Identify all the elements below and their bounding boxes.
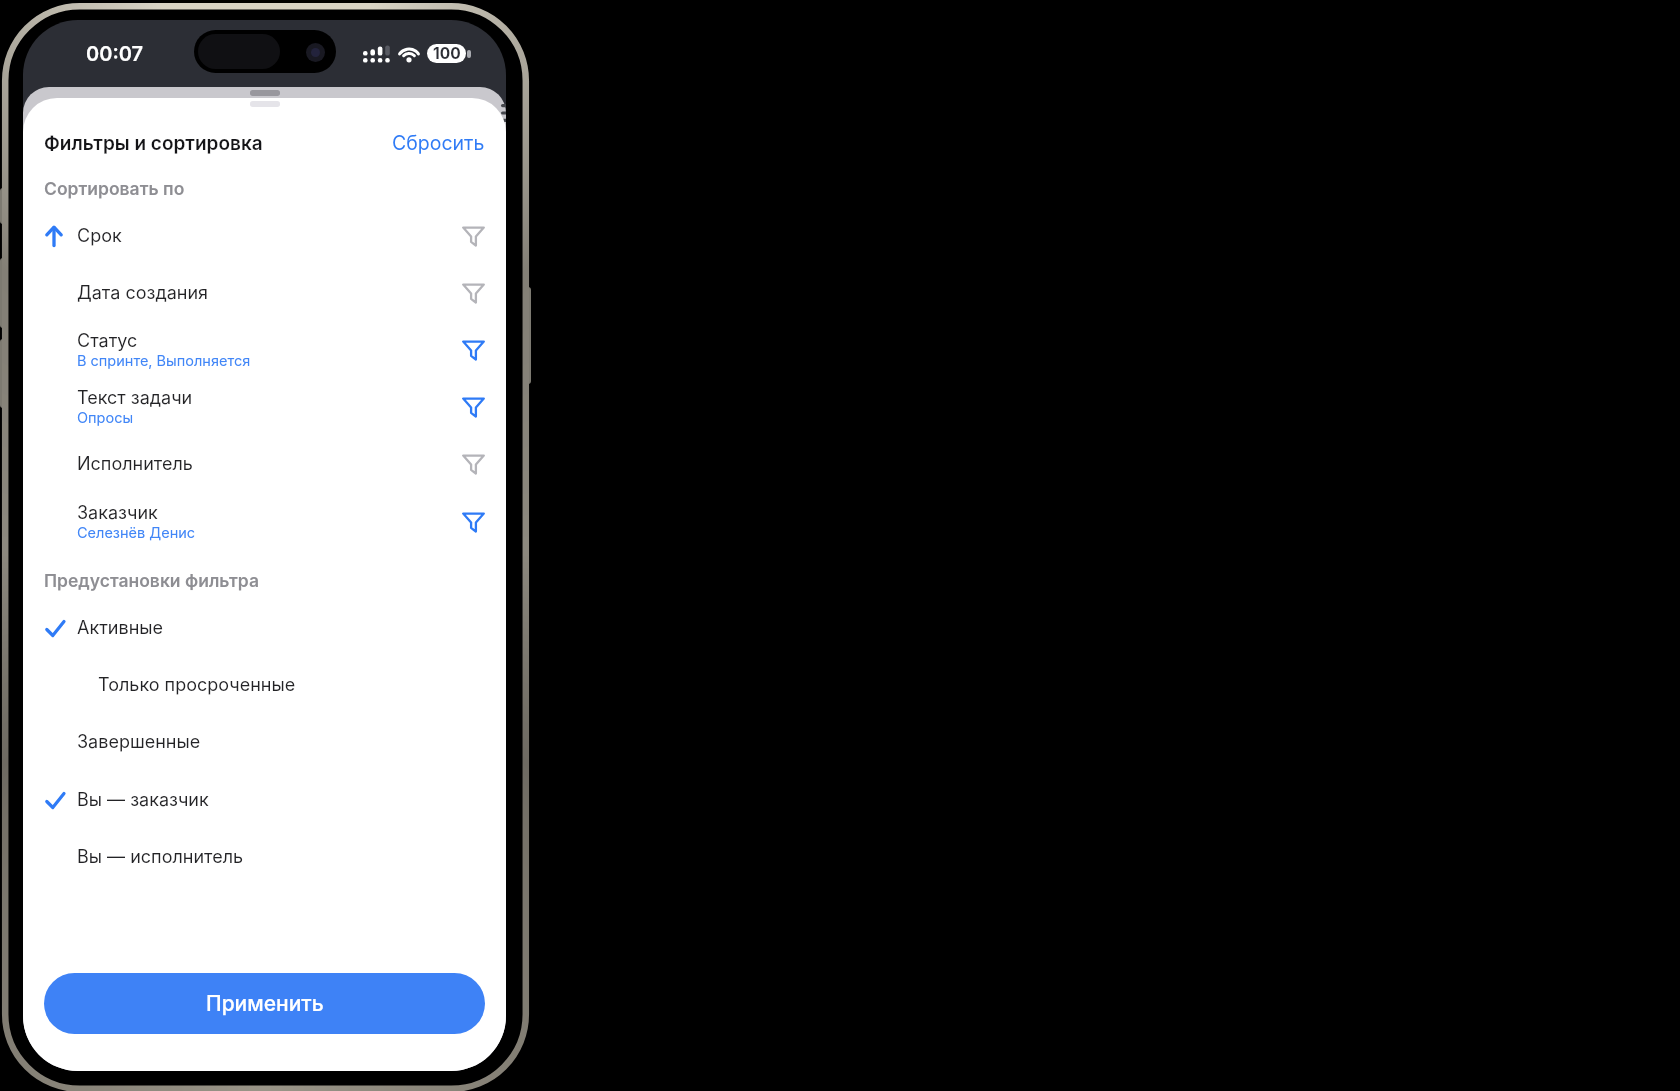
staticText: Исполнитель xyxy=(77,453,193,475)
staticText: Активные xyxy=(77,617,164,639)
button[interactable]: Сбросить xyxy=(285,125,485,161)
staticText: Заказчик xyxy=(77,502,158,524)
staticText: Завершенные xyxy=(77,731,201,753)
staticText: В спринте, Выполняется xyxy=(77,352,251,370)
staticText: Дата создания xyxy=(77,282,209,304)
staticText: Опросы xyxy=(77,409,134,427)
button[interactable]: Завершенные xyxy=(44,720,485,764)
staticText: Фильтры и сортировка xyxy=(44,132,263,155)
staticText: Вы — исполнитель xyxy=(77,846,244,868)
staticText: Предустановки фильтра xyxy=(44,570,260,591)
button[interactable]: Применить xyxy=(44,973,485,1034)
button[interactable]: Исполнитель xyxy=(44,442,485,486)
button[interactable]: Заказчик xyxy=(44,490,485,554)
staticText: Текст задачи xyxy=(77,387,193,409)
button[interactable]: Активные xyxy=(44,606,485,650)
button[interactable]: Вы — исполнитель xyxy=(44,835,485,879)
button[interactable]: Вы — заказчик xyxy=(44,778,485,822)
button[interactable]: Дата создания xyxy=(44,271,485,315)
staticText: Селезнёв Денис xyxy=(77,524,196,542)
staticText: Статус xyxy=(77,330,138,352)
staticText: Вы — заказчик xyxy=(77,789,209,811)
staticText: 100 xyxy=(433,44,461,63)
staticText: Срок xyxy=(77,225,122,247)
staticText: Только просроченные xyxy=(98,674,296,696)
button[interactable]: Только просроченные xyxy=(44,663,485,707)
staticText: 00:07 xyxy=(86,42,144,66)
staticText: Сбросить xyxy=(392,131,485,155)
staticText: Сортировать по xyxy=(44,178,185,199)
button[interactable]: Статус xyxy=(44,318,485,382)
staticText: Применить xyxy=(206,991,324,1016)
button[interactable]: Текст задачи xyxy=(44,375,485,439)
button[interactable]: Срок xyxy=(44,214,485,258)
